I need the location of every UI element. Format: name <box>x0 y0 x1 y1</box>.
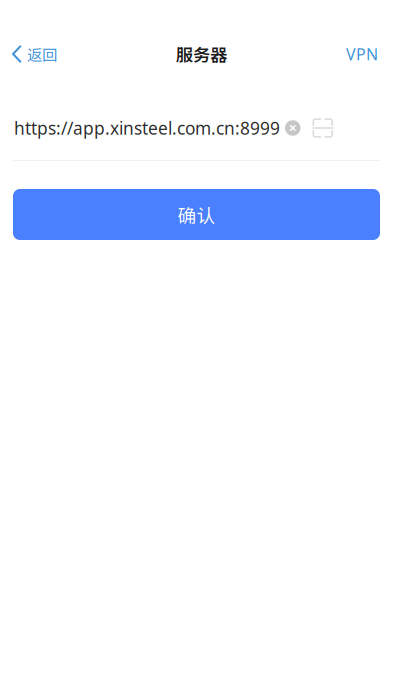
button[interactable]: 确认 <box>13 189 380 240</box>
staticText: 服务器 <box>176 41 227 67</box>
button[interactable]: Clear text <box>285 120 300 136</box>
button[interactable]: 返回 <box>0 32 69 76</box>
button[interactable]: Scan QR code <box>312 118 333 138</box>
button[interactable]: VPN <box>334 32 393 76</box>
staticText: VPN <box>346 43 378 65</box>
staticText: 确认 <box>177 201 215 228</box>
staticText: https://app.xinsteel.com.cn:8999 <box>14 116 280 139</box>
staticText: 返回 <box>27 43 57 65</box>
